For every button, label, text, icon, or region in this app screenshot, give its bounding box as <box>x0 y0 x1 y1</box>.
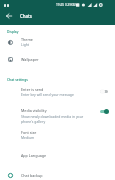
button[interactable]: Back <box>2 9 15 22</box>
staticText: Display <box>7 29 19 33</box>
staticText: 0.39KB/s <box>65 3 78 7</box>
button[interactable] <box>0 83 115 99</box>
button[interactable] <box>0 102 115 125</box>
staticText: Font size <box>21 130 37 135</box>
staticText: Wallpaper <box>21 57 39 62</box>
button[interactable] <box>0 127 115 142</box>
staticText: Chat backup <box>21 173 43 178</box>
staticText: Media visibility <box>21 108 47 113</box>
staticText: 19:25 <box>56 3 65 7</box>
button[interactable] <box>0 146 115 162</box>
button[interactable]: Toggle on <box>99 106 109 116</box>
staticText: Show newly downloaded media in your phon… <box>21 114 87 124</box>
button[interactable] <box>0 33 115 48</box>
staticText: Chats <box>20 13 32 19</box>
staticText: Light <box>21 42 30 47</box>
staticText: App Language <box>21 153 47 158</box>
staticText: Enter is send <box>21 87 44 92</box>
button[interactable] <box>0 51 115 67</box>
staticText: Enter key will send your message <box>21 92 74 97</box>
button[interactable]: Toggle off <box>99 86 109 96</box>
staticText: Theme <box>21 37 33 42</box>
button[interactable] <box>0 167 115 180</box>
staticText: Chat settings <box>7 77 28 81</box>
staticText: Medium <box>21 135 35 140</box>
